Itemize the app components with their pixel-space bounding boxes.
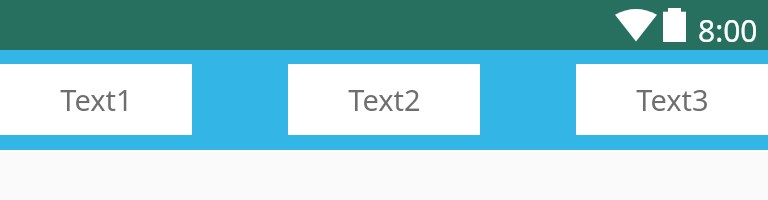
staticText: Text1 (60, 80, 133, 119)
button[interactable]: Text3 (576, 64, 768, 135)
button[interactable]: Text2 (288, 64, 480, 135)
other: Battery full (663, 8, 686, 42)
staticText: Text3 (636, 80, 709, 119)
button[interactable]: Text1 (0, 64, 192, 135)
staticText: 8:00 (698, 10, 758, 51)
staticText: Text2 (348, 80, 421, 119)
other: Wi-Fi signal (615, 9, 657, 43)
